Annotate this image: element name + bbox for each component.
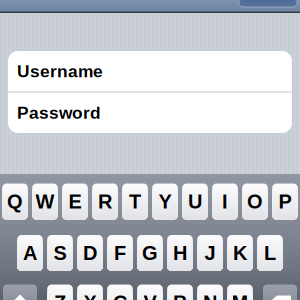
button[interactable]: E — [62, 183, 87, 219]
staticText: H — [173, 242, 187, 264]
staticText: Z — [54, 291, 66, 300]
button[interactable]: U — [182, 183, 207, 219]
button[interactable]: I — [212, 183, 237, 219]
button[interactable]: O — [242, 183, 267, 219]
staticText: O — [247, 190, 263, 213]
staticText: D — [83, 242, 97, 264]
button[interactable]: B — [167, 284, 192, 300]
staticText: Password — [17, 103, 101, 122]
button[interactable]: V — [137, 284, 162, 300]
staticText: K — [233, 242, 247, 264]
staticText: S — [53, 242, 66, 264]
button[interactable]: G — [137, 235, 162, 271]
button[interactable]: X — [77, 284, 102, 300]
staticText: G — [142, 242, 158, 264]
staticText: T — [129, 190, 141, 213]
staticText: L — [264, 242, 276, 264]
button[interactable]: L — [257, 235, 282, 271]
staticText: Q — [7, 190, 23, 213]
staticText: M — [231, 291, 248, 300]
button[interactable]: J — [197, 235, 222, 271]
button[interactable]: Delete — [263, 284, 297, 300]
staticText: X — [83, 291, 96, 300]
staticText: Username — [17, 62, 103, 81]
staticText: E — [68, 190, 81, 213]
staticText: R — [98, 190, 112, 213]
button[interactable]: K — [227, 235, 252, 271]
button[interactable]: P — [272, 183, 297, 219]
button[interactable]: N — [197, 284, 222, 300]
staticText: V — [143, 291, 156, 300]
button[interactable]: D — [77, 235, 102, 271]
button[interactable]: Username — [8, 51, 292, 91]
button[interactable]: Q — [2, 183, 27, 219]
staticText: J — [204, 242, 215, 264]
button[interactable]: F — [107, 235, 132, 271]
button[interactable]: T — [122, 183, 147, 219]
button[interactable]: H — [167, 235, 192, 271]
button[interactable]: Password — [8, 92, 292, 133]
button[interactable]: Done — [239, 0, 297, 7]
staticText: C — [113, 291, 127, 300]
staticText: Y — [158, 190, 171, 213]
staticText: P — [278, 190, 291, 213]
button[interactable]: Shift — [3, 284, 37, 300]
staticText: B — [173, 291, 187, 300]
button[interactable]: Z — [47, 284, 72, 300]
staticText: U — [188, 190, 202, 213]
staticText: I — [222, 190, 228, 213]
staticText: W — [35, 190, 54, 213]
button[interactable]: M — [227, 284, 252, 300]
button[interactable]: Y — [152, 183, 177, 219]
staticText: F — [114, 242, 126, 264]
button[interactable]: R — [92, 183, 117, 219]
staticText: N — [203, 291, 217, 300]
button[interactable]: C — [107, 284, 132, 300]
button[interactable]: S — [47, 235, 72, 271]
staticText: A — [23, 242, 37, 264]
button[interactable]: A — [17, 235, 42, 271]
button[interactable]: W — [32, 183, 57, 219]
